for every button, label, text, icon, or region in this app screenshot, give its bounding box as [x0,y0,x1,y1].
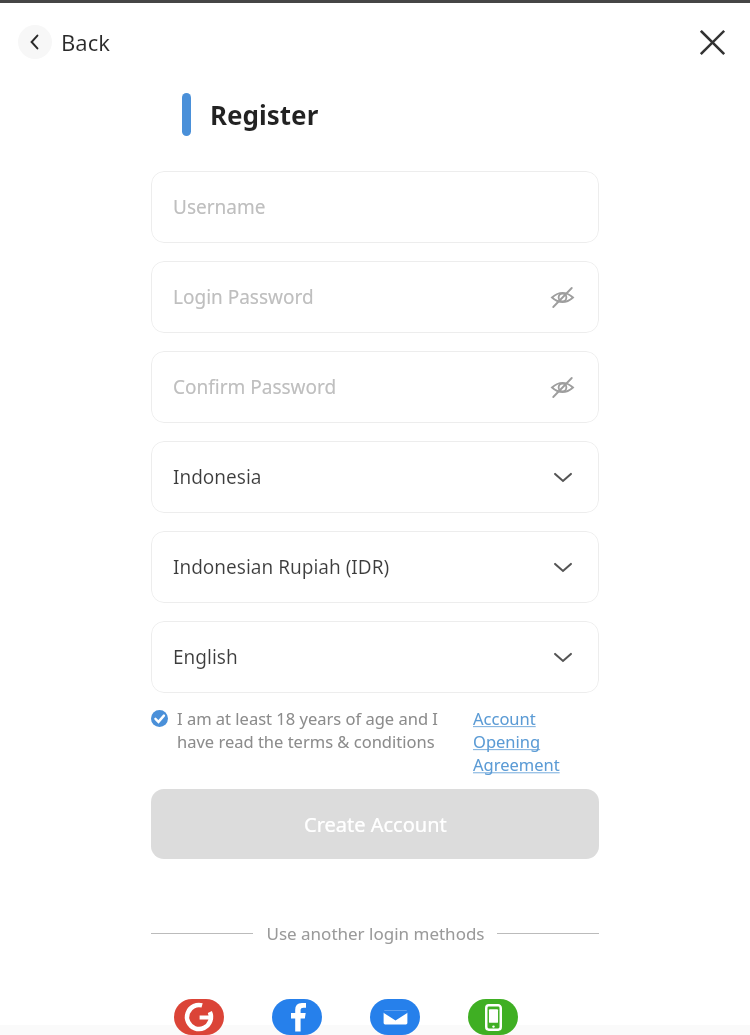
button[interactable]: Sign in with Facebook [272,999,322,1035]
other: Show password [547,282,577,312]
button[interactable]: Sign in with Email [370,999,420,1035]
staticText: Indonesian Rupiah (IDR) [173,554,390,580]
button[interactable]: I am at least 18 years of age and I have… [151,707,463,753]
other: Show password [547,372,577,402]
staticText: Confirm Password [173,374,337,400]
staticText: Use another login methods [266,922,485,945]
staticText: Back [61,27,110,57]
other: Expand [549,463,577,491]
button[interactable]: Username [151,171,599,243]
staticText: Register [210,97,319,132]
staticText: Login Password [173,284,314,310]
staticText: I am at least 18 years of age and I have… [177,707,463,753]
other: Expand [549,643,577,671]
button[interactable]: Create Account [151,789,599,859]
button[interactable]: Close [688,18,736,66]
button[interactable]: Indonesian Rupiah (IDR) [151,531,599,603]
staticText: Indonesia [173,464,262,490]
staticText: Account Opening Agreement [473,707,599,776]
button[interactable]: Back [14,19,114,65]
button[interactable]: English [151,621,599,693]
button[interactable]: Indonesia [151,441,599,513]
button[interactable]: Confirm Password [151,351,599,423]
staticText: Username [173,194,266,220]
staticText: Create Account [304,811,447,838]
button[interactable]: Login Password [151,261,599,333]
staticText: English [173,644,238,670]
button[interactable]: Account Opening Agreement [473,707,599,776]
button[interactable]: Sign in with Google [174,999,224,1035]
button[interactable]: Sign in with Phone [468,999,518,1035]
other: Expand [549,553,577,581]
